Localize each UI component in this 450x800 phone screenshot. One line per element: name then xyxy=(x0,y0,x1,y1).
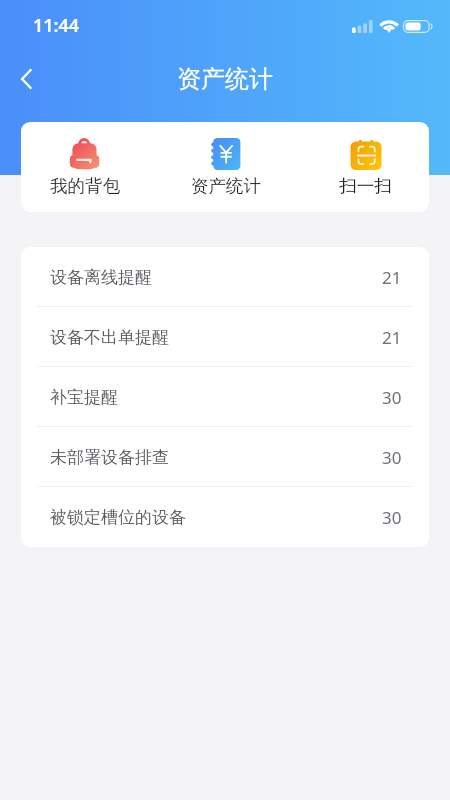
staticText: 11:44 xyxy=(33,13,80,38)
staticText: 被锁定槽位的设备 xyxy=(50,507,186,528)
button[interactable]: Back xyxy=(2,55,50,103)
button[interactable]: 补宝提醒 xyxy=(21,367,429,427)
button[interactable]: 扫一扫 xyxy=(302,122,429,212)
button[interactable]: 资产统计 xyxy=(162,122,289,212)
staticText: 资产统计 xyxy=(177,64,273,94)
button[interactable]: 未部署设备排查 xyxy=(21,427,429,487)
staticText: 30 xyxy=(382,506,402,529)
staticText: 30 xyxy=(382,386,402,409)
button[interactable]: 被锁定槽位的设备 xyxy=(21,487,429,547)
button[interactable]: 我的背包 xyxy=(21,122,148,212)
button[interactable]: 设备离线提醒 xyxy=(21,247,429,307)
button[interactable]: 设备不出单提醒 xyxy=(21,307,429,367)
staticText: 补宝提醒 xyxy=(50,387,118,408)
staticText: 扫一扫 xyxy=(339,175,392,197)
staticText: 21 xyxy=(382,326,402,349)
staticText: 设备不出单提醒 xyxy=(50,327,169,348)
staticText: 30 xyxy=(382,446,402,469)
staticText: 21 xyxy=(382,266,402,289)
staticText: 资产统计 xyxy=(191,175,261,197)
staticText: 未部署设备排查 xyxy=(50,447,169,468)
staticText: 设备离线提醒 xyxy=(50,267,152,288)
staticText: 我的背包 xyxy=(50,175,120,197)
